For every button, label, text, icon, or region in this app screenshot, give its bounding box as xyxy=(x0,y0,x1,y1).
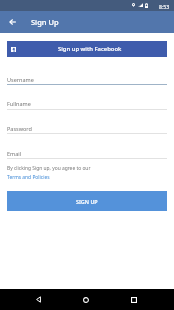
staticText: By clicking Sign up, you agree to our xyxy=(7,165,91,172)
staticText: Sign Up xyxy=(31,17,59,27)
button[interactable]: Recent apps xyxy=(123,289,145,310)
button[interactable]: Back xyxy=(27,289,49,310)
staticText: Password xyxy=(7,125,32,132)
button[interactable]: Terms and Policies xyxy=(7,174,50,181)
staticText: Terms and Policies xyxy=(7,174,50,181)
staticText: SIGN UP xyxy=(76,198,98,205)
button[interactable]: Navigate up xyxy=(3,13,21,31)
staticText: Email xyxy=(7,150,22,157)
staticText: Username xyxy=(7,76,34,83)
staticText: 8:53 xyxy=(159,3,170,10)
staticText: Sign up with Facebook xyxy=(58,45,122,53)
button[interactable]: Sign up with Facebook xyxy=(7,41,167,57)
button[interactable]: SIGN UP xyxy=(7,191,167,211)
button[interactable]: Home xyxy=(75,289,97,310)
staticText: Fullname xyxy=(7,100,31,107)
